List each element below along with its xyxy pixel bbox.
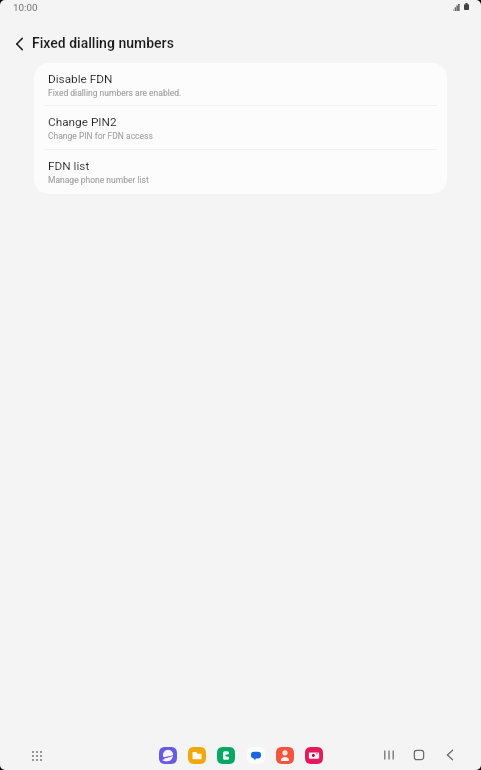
staticText: Change PIN2 <box>48 115 117 129</box>
button[interactable]: Recents <box>377 743 401 767</box>
button[interactable]: Phone <box>217 747 235 764</box>
button[interactable]: Apps <box>25 744 49 768</box>
button[interactable]: Home <box>407 743 431 767</box>
button[interactable]: Internet <box>159 747 177 764</box>
button[interactable]: Disable FDN <box>34 63 447 106</box>
staticText: 10:00 <box>13 2 38 13</box>
staticText: Fixed dialling numbers <box>32 35 174 51</box>
staticText: Manage phone number list <box>48 175 149 185</box>
button[interactable]: Messages <box>247 747 265 764</box>
button[interactable]: Back <box>438 743 462 767</box>
staticText: Fixed dialling numbers are enabled. <box>48 88 182 98</box>
staticText: Change PIN for FDN access <box>48 131 153 141</box>
button[interactable]: Camera <box>305 747 323 764</box>
button[interactable]: Navigate up <box>6 30 33 57</box>
button[interactable]: My Files <box>188 747 206 764</box>
staticText: Disable FDN <box>48 72 113 86</box>
button[interactable]: Change PIN2 <box>34 106 447 150</box>
button[interactable]: Contacts <box>276 747 294 764</box>
button[interactable]: FDN list <box>34 150 447 194</box>
staticText: FDN list <box>48 159 90 173</box>
